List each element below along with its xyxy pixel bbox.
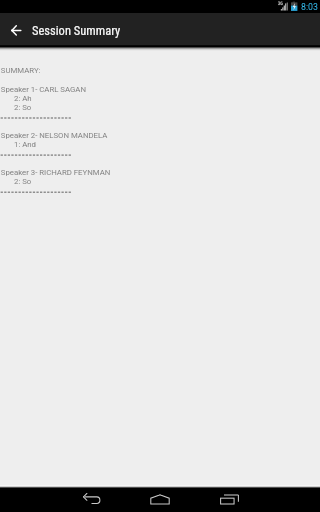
button[interactable]: Home — [147, 488, 173, 510]
staticText: Session Summary — [32, 23, 121, 38]
button[interactable]: Recent apps — [216, 488, 242, 510]
button[interactable]: Back — [78, 488, 104, 510]
button[interactable]: Navigate up — [7, 20, 25, 38]
staticText: 8:03 — [301, 2, 318, 12]
